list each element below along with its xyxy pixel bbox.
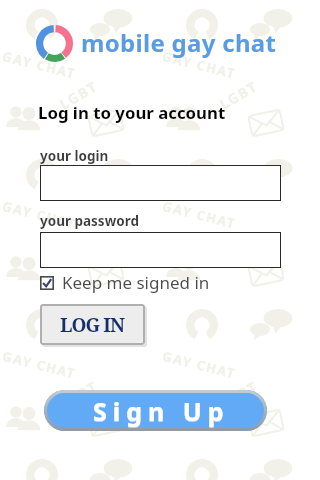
button[interactable]: Sign Up <box>44 390 267 431</box>
button[interactable] <box>40 165 281 201</box>
staticText: mobile gay chat <box>81 26 277 59</box>
staticText: Keep me signed in <box>62 271 210 294</box>
button[interactable]: LOG IN <box>40 304 145 345</box>
staticText: Sign Up <box>93 394 230 428</box>
staticText: your password <box>40 212 139 230</box>
staticText: Sign Up <box>93 395 230 429</box>
staticText: Log in to your account <box>38 101 226 124</box>
staticText: LOG IN <box>60 312 125 338</box>
button[interactable] <box>40 232 281 268</box>
staticText: your login <box>40 147 109 165</box>
button[interactable]: Keep me signed in <box>40 271 210 294</box>
